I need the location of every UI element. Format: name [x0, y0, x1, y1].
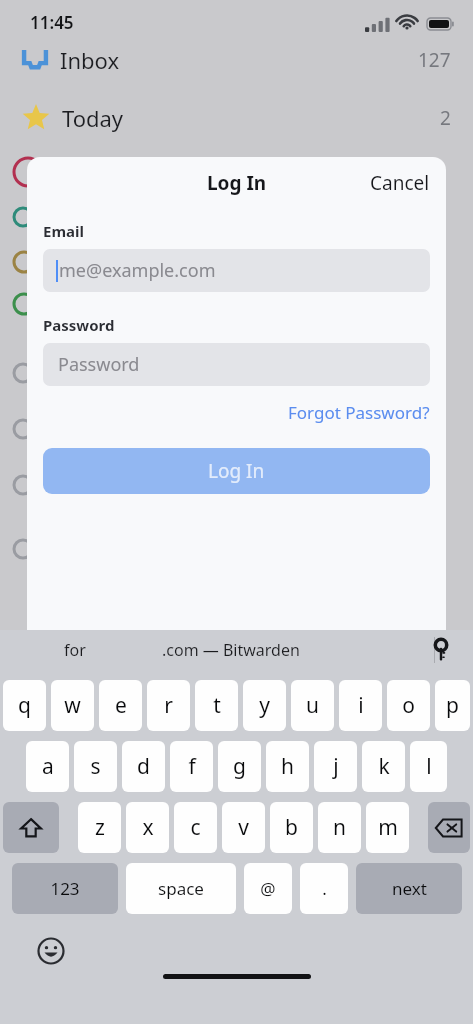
staticText: n	[333, 813, 346, 842]
staticText: z	[95, 813, 105, 842]
button[interactable]: n	[318, 802, 361, 853]
staticText: c	[190, 813, 201, 842]
button[interactable]: o	[387, 680, 430, 731]
button[interactable]: h	[266, 741, 309, 792]
staticText: d	[137, 752, 150, 781]
staticText: r	[164, 691, 173, 720]
button[interactable]: space	[126, 863, 236, 914]
button[interactable]: e	[99, 680, 142, 731]
button[interactable]: z	[78, 802, 121, 853]
staticText: Inbox	[60, 45, 120, 75]
button[interactable]: l	[410, 741, 447, 792]
button[interactable]: @	[244, 863, 292, 914]
staticText: Password	[43, 315, 115, 335]
button[interactable]: j	[314, 741, 357, 792]
staticText: e	[115, 691, 127, 720]
button[interactable]: m	[366, 802, 409, 853]
button[interactable]: Emoji	[34, 934, 68, 968]
staticText: x	[142, 813, 154, 842]
button[interactable]: Passwords	[425, 634, 457, 666]
button[interactable]: k	[362, 741, 405, 792]
button[interactable]: me@example.com	[43, 249, 430, 292]
button[interactable]: p	[435, 680, 470, 731]
button[interactable]: Password	[43, 343, 430, 386]
staticText: g	[233, 752, 246, 781]
staticText: a	[42, 752, 54, 781]
button[interactable]: b	[270, 802, 313, 853]
staticText: .	[322, 877, 327, 900]
staticText: 127	[418, 47, 451, 73]
staticText: h	[281, 752, 294, 781]
staticText: t	[213, 691, 221, 720]
button[interactable]: t	[195, 680, 238, 731]
staticText: o	[402, 691, 415, 720]
staticText: for	[64, 639, 86, 661]
staticText: b	[285, 813, 298, 842]
staticText: Forgot Password?	[288, 401, 430, 424]
button[interactable]: d	[122, 741, 165, 792]
staticText: 123	[50, 877, 80, 900]
staticText: next	[392, 877, 427, 900]
staticText: u	[306, 691, 319, 720]
button[interactable]: i	[339, 680, 382, 731]
staticText: Email	[43, 221, 84, 241]
staticText: f	[188, 752, 196, 781]
button[interactable]: Shift	[3, 802, 59, 853]
staticText: me@example.com	[59, 258, 216, 283]
button[interactable]: r	[147, 680, 190, 731]
button[interactable]: f	[170, 741, 213, 792]
button[interactable]: c	[174, 802, 217, 853]
staticText: Password	[58, 352, 140, 377]
button[interactable]: Backspace	[428, 802, 470, 853]
staticText: k	[378, 752, 390, 781]
button[interactable]: v	[222, 802, 265, 853]
staticText: 11:45	[30, 11, 74, 34]
button[interactable]: .	[300, 863, 348, 914]
staticText: v	[238, 813, 249, 842]
button[interactable]: y	[243, 680, 286, 731]
staticText: j	[333, 752, 339, 781]
staticText: w	[64, 691, 81, 720]
staticText: @	[260, 877, 276, 900]
staticText: m	[378, 813, 398, 842]
staticText: i	[358, 691, 364, 720]
staticText: l	[426, 752, 432, 781]
staticText: s	[90, 752, 101, 781]
button[interactable]: u	[291, 680, 334, 731]
staticText: Log In	[208, 458, 265, 484]
staticText: .com — Bitwarden	[162, 639, 300, 661]
button[interactable]: g	[218, 741, 261, 792]
staticText: Log In	[207, 170, 267, 196]
button[interactable]: Forgot Password?	[288, 397, 430, 428]
button[interactable]: s	[74, 741, 117, 792]
button[interactable]: Cancel	[354, 162, 446, 204]
button[interactable]: q	[3, 680, 46, 731]
staticText: 2	[440, 105, 451, 131]
button[interactable]: a	[26, 741, 69, 792]
button[interactable]: next	[356, 863, 462, 914]
button[interactable]: 123	[12, 863, 118, 914]
staticText: Today	[62, 103, 124, 133]
button[interactable]: Inbox	[22, 44, 451, 76]
button[interactable]: w	[51, 680, 94, 731]
button[interactable]: Today	[22, 98, 451, 138]
button[interactable]: x	[126, 802, 169, 853]
button[interactable]: Log In	[43, 448, 430, 494]
staticText: p	[446, 691, 459, 720]
staticText: space	[158, 877, 204, 900]
staticText: Cancel	[370, 170, 430, 196]
staticText: y	[259, 691, 270, 720]
staticText: q	[18, 691, 31, 720]
